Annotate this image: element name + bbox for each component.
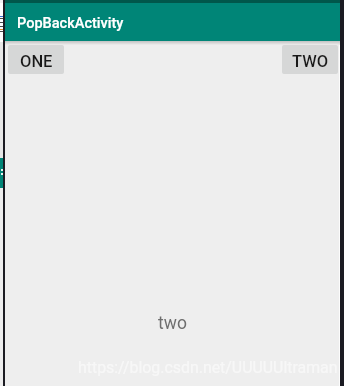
staticText: ONE [20, 52, 53, 71]
staticText: two [158, 313, 187, 334]
staticText: TWO [292, 52, 329, 71]
staticText: PopBackActivity [17, 15, 124, 32]
button[interactable]: ONE [8, 45, 64, 74]
staticText: https://blog.csdn.net/UUUUUltraman [78, 358, 338, 377]
button[interactable]: TWO [282, 45, 338, 74]
